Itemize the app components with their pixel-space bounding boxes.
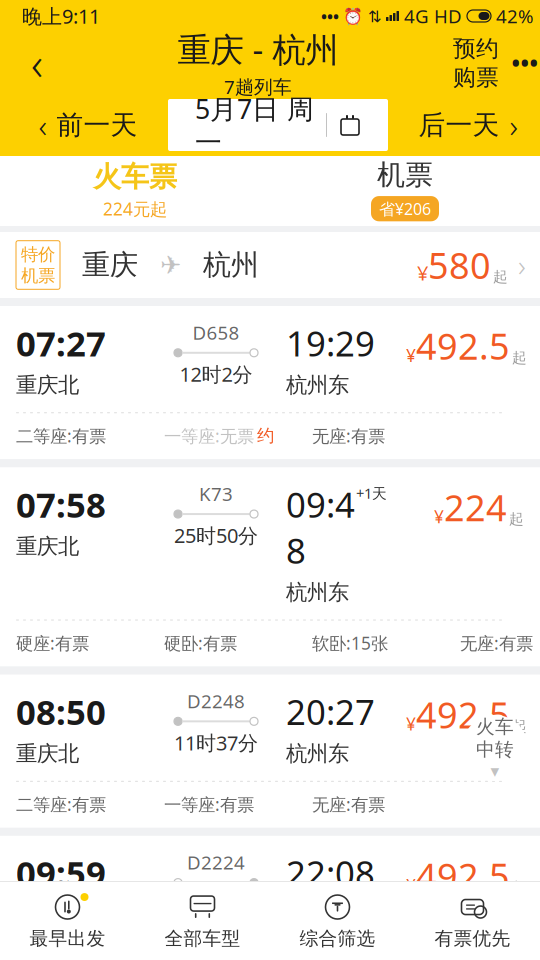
staticText: ✈ xyxy=(160,251,181,279)
staticText: 无座:有票 xyxy=(312,793,385,816)
staticText: 42% xyxy=(491,4,534,28)
staticText: 07:58 xyxy=(16,481,106,527)
staticText: 重庆北 xyxy=(16,902,79,928)
button[interactable]: 09:59 xyxy=(0,836,540,960)
staticText: ▾ xyxy=(490,761,499,781)
staticText: 224元起 xyxy=(103,197,167,220)
button[interactable]: 最早出发 xyxy=(0,884,135,958)
staticText: 7趟列车 xyxy=(224,74,292,99)
staticText: 起 xyxy=(512,717,527,735)
staticText: 杭州东 xyxy=(286,579,349,605)
staticText: D658 xyxy=(192,320,239,345)
staticText: 全部车型 xyxy=(164,927,240,950)
staticText: ¥ xyxy=(417,259,428,286)
staticText: 重庆 - 杭州 xyxy=(177,27,338,71)
staticText: 20:27 xyxy=(286,688,375,734)
button[interactable]: 特价 xyxy=(0,232,540,298)
staticText: 杭州东 xyxy=(286,372,349,398)
button[interactable]: 综合筛选 xyxy=(270,884,405,958)
staticText: 最早出发 xyxy=(29,927,105,950)
staticText: 重庆北 xyxy=(16,372,79,398)
button[interactable]: 5月7日 周一 xyxy=(168,99,388,151)
staticText: 580 xyxy=(428,241,491,289)
button[interactable]: 07:27 xyxy=(0,306,540,459)
staticText: 起 xyxy=(509,510,524,528)
staticText: 一等座:有票 xyxy=(164,793,254,816)
staticText: 前一天 xyxy=(56,109,137,141)
staticText: 杭州东 xyxy=(286,902,349,928)
staticText: 无座:有票 xyxy=(312,424,385,447)
staticText: 中转 xyxy=(476,738,514,761)
staticText: › xyxy=(518,245,526,284)
staticText: 预约 xyxy=(453,35,499,62)
staticText: 25时50分 xyxy=(174,522,258,549)
button[interactable]: 07:58 xyxy=(0,467,540,667)
staticText: 省¥206 xyxy=(379,198,431,219)
staticText: D2224 xyxy=(187,850,245,875)
staticText: 二等座:有票 xyxy=(16,424,106,447)
staticText: 起 xyxy=(512,349,527,367)
staticText: 硬卧:有票 xyxy=(164,631,237,654)
staticText: 无座:有票 xyxy=(460,631,533,654)
staticText: 4G HD xyxy=(399,4,467,28)
staticText: 11时37分 xyxy=(174,729,258,756)
staticText: 特价 xyxy=(21,244,55,265)
button[interactable]: 预约 xyxy=(450,32,502,94)
staticText: ••• xyxy=(321,5,339,27)
staticText: 492.5 xyxy=(416,852,510,900)
staticText: 重庆北 xyxy=(16,533,79,559)
staticText: 12时2分 xyxy=(179,361,252,387)
button[interactable]: 机票 xyxy=(270,150,540,232)
button[interactable]: 返回 xyxy=(8,32,66,94)
staticText: D2248 xyxy=(187,688,245,713)
button[interactable]: ‹ xyxy=(8,99,168,151)
button[interactable]: 后一天 xyxy=(388,99,540,151)
staticText: 软卧:15张 xyxy=(312,631,388,654)
staticText: 机票 xyxy=(21,265,55,286)
staticText: 杭州东 xyxy=(286,741,349,767)
staticText: 晚上9:11 xyxy=(22,3,100,29)
staticText: 5月7日 周一 xyxy=(195,91,314,159)
staticText: 二等座:有票 xyxy=(16,793,106,816)
button[interactable]: 火车 xyxy=(462,715,528,781)
staticText: 492.5 xyxy=(416,322,510,370)
staticText: ¥ xyxy=(434,505,444,528)
button[interactable]: 有票优先 xyxy=(405,884,540,958)
staticText: ‹ xyxy=(38,104,46,146)
staticText: 起 xyxy=(493,268,508,286)
button[interactable]: 更多 xyxy=(502,32,540,94)
staticText: 19:29 xyxy=(286,320,375,366)
staticText: 09:48 xyxy=(286,481,355,573)
staticText: 22:08 xyxy=(286,850,375,896)
button[interactable]: 火车票 xyxy=(0,152,270,230)
staticText: 重庆 xyxy=(82,248,138,282)
staticText: 07:27 xyxy=(16,320,106,366)
staticText: 后一天 xyxy=(418,109,499,141)
staticText: +1天 xyxy=(356,483,387,503)
staticText: 综合筛选 xyxy=(299,927,375,950)
staticText: K73 xyxy=(199,481,233,506)
staticText: 起 xyxy=(512,879,527,897)
staticText: 机票 xyxy=(377,158,433,192)
staticText: 有票优先 xyxy=(434,927,510,950)
staticText: 重庆北 xyxy=(16,741,79,767)
staticText: 购票 xyxy=(453,63,499,91)
staticText: ¥ xyxy=(406,874,416,897)
staticText: 492.5 xyxy=(416,690,510,738)
staticText: 火车票 xyxy=(93,160,177,194)
staticText: 杭州 xyxy=(203,248,259,282)
staticText: ¥ xyxy=(406,712,416,735)
staticText: 224 xyxy=(444,483,507,531)
staticText: 约 xyxy=(257,425,274,446)
button[interactable]: 08:50 xyxy=(0,674,540,828)
staticText: ¥ xyxy=(406,344,416,367)
button[interactable]: 全部车型 xyxy=(135,884,270,958)
staticText: › xyxy=(509,104,517,146)
staticText: 12时9分 xyxy=(179,891,252,917)
staticText: 09:59 xyxy=(16,850,106,896)
staticText: ⏰ ⇅ xyxy=(339,5,386,27)
staticText: 火车 xyxy=(476,715,514,738)
